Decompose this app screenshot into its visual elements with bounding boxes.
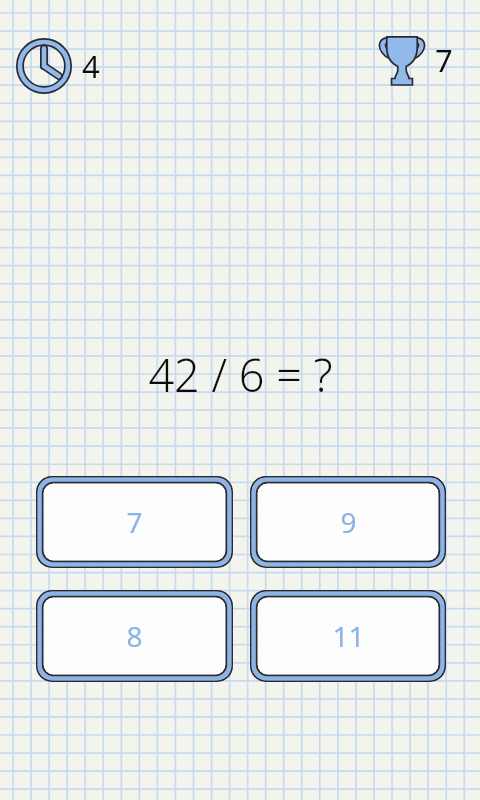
staticText: 42 / 6 = ? [148, 344, 333, 405]
button[interactable]: Score [378, 31, 453, 89]
button[interactable]: 7 [36, 476, 233, 568]
button[interactable]: 9 [250, 476, 446, 568]
staticText: 8 [126, 617, 143, 655]
staticText: 4 [82, 45, 100, 87]
button[interactable]: Timer [17, 39, 100, 93]
staticText: 7 [435, 39, 453, 81]
button[interactable]: 8 [36, 590, 233, 682]
staticText: 11 [332, 617, 365, 655]
staticText: 9 [340, 503, 357, 541]
button[interactable]: 11 [250, 590, 446, 682]
staticText: 7 [126, 503, 143, 541]
